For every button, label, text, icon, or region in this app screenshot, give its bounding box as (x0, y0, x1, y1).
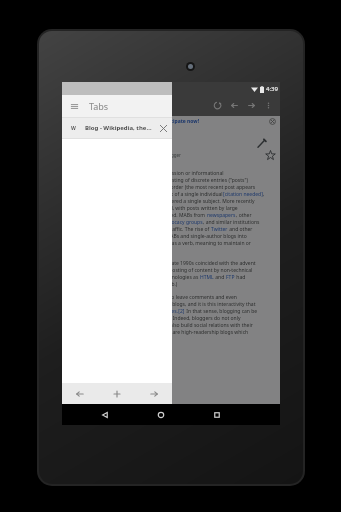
staticText: and (214, 274, 226, 281)
staticText: Twitter (211, 226, 228, 233)
button[interactable]: Back (93, 404, 117, 425)
button[interactable]: Close tab (156, 121, 170, 135)
staticText: account for an increasing quantity of bl… (69, 226, 211, 233)
staticText: occasionally of a small group, and often… (69, 198, 255, 205)
staticText: W (71, 125, 76, 132)
staticText: readers and other bloggers. However, the… (69, 329, 249, 336)
button[interactable]: Reload (209, 95, 226, 116)
staticText: site published on the World Wide Web con… (69, 177, 249, 184)
staticText: typically displayed in reverse chronolog… (69, 184, 256, 191)
staticText: users. (Previously, a knowledge of such … (69, 274, 200, 281)
staticText: "microblogging" systems helps integrate … (69, 233, 247, 240)
staticText: first). Until 2009 blogs were usually th… (69, 191, 223, 198)
staticText: A majority are interactive, allowing vis… (69, 294, 237, 301)
staticText: 4:39 (266, 85, 278, 93)
staticText: , and similar institutions (203, 219, 260, 226)
button[interactable]: New tab (98, 383, 135, 404)
staticText: , (263, 191, 265, 198)
staticText: Tabs (89, 100, 109, 112)
button[interactable]: W (62, 118, 172, 138)
staticText: of web publishing tools that facilitated… (69, 267, 253, 274)
staticText: websites (156, 308, 177, 315)
staticText: produce content to post on their blogs b… (69, 322, 253, 329)
staticText: The emergence and growth of blogs in the… (69, 260, 256, 267)
button[interactable]: Recent apps (205, 404, 229, 425)
staticText: and other (228, 226, 253, 233)
staticText: . Indeed, bloggers do not only (170, 315, 241, 322)
button[interactable]: More options (260, 95, 277, 116)
staticText: For the Google service with same name, s… (70, 152, 181, 158)
button[interactable]: Back (226, 95, 243, 116)
staticText: societal newstreams. Blog can also be us… (69, 240, 251, 247)
button[interactable]: Open navigation menu (62, 95, 172, 117)
staticText: Wiki Loves Earth Competition 2015 – part… (67, 118, 200, 125)
button[interactable]: Back (62, 383, 98, 404)
staticText: had (235, 274, 246, 281)
staticText: HTML (200, 274, 214, 281)
staticText: advocacy groups (163, 219, 203, 226)
staticText: been required to publish content on the … (69, 281, 178, 288)
staticText: is a discussion or informational (149, 170, 224, 177)
staticText: numbers of authors and professionally ed… (69, 212, 207, 219)
button[interactable]: Home (149, 404, 173, 425)
button[interactable]: Forward (135, 383, 172, 404)
other: Open navigation menu (70, 102, 79, 111)
staticText: FTP (226, 274, 235, 281)
staticText: Blog - Wikipedia, the… (85, 124, 156, 132)
staticText: [citation needed] (223, 191, 263, 198)
staticText: newspapers (207, 212, 236, 219)
staticText: "multi-author blogs" (MABs) have develop… (69, 205, 238, 212)
staticText: , other (236, 212, 252, 219)
button[interactable]: Forward (243, 95, 260, 116)
staticText: .[2] (177, 308, 185, 315)
staticText: message each other via GUI widgets on th… (69, 301, 256, 308)
staticText: In that sense, blogging can be (185, 308, 258, 315)
